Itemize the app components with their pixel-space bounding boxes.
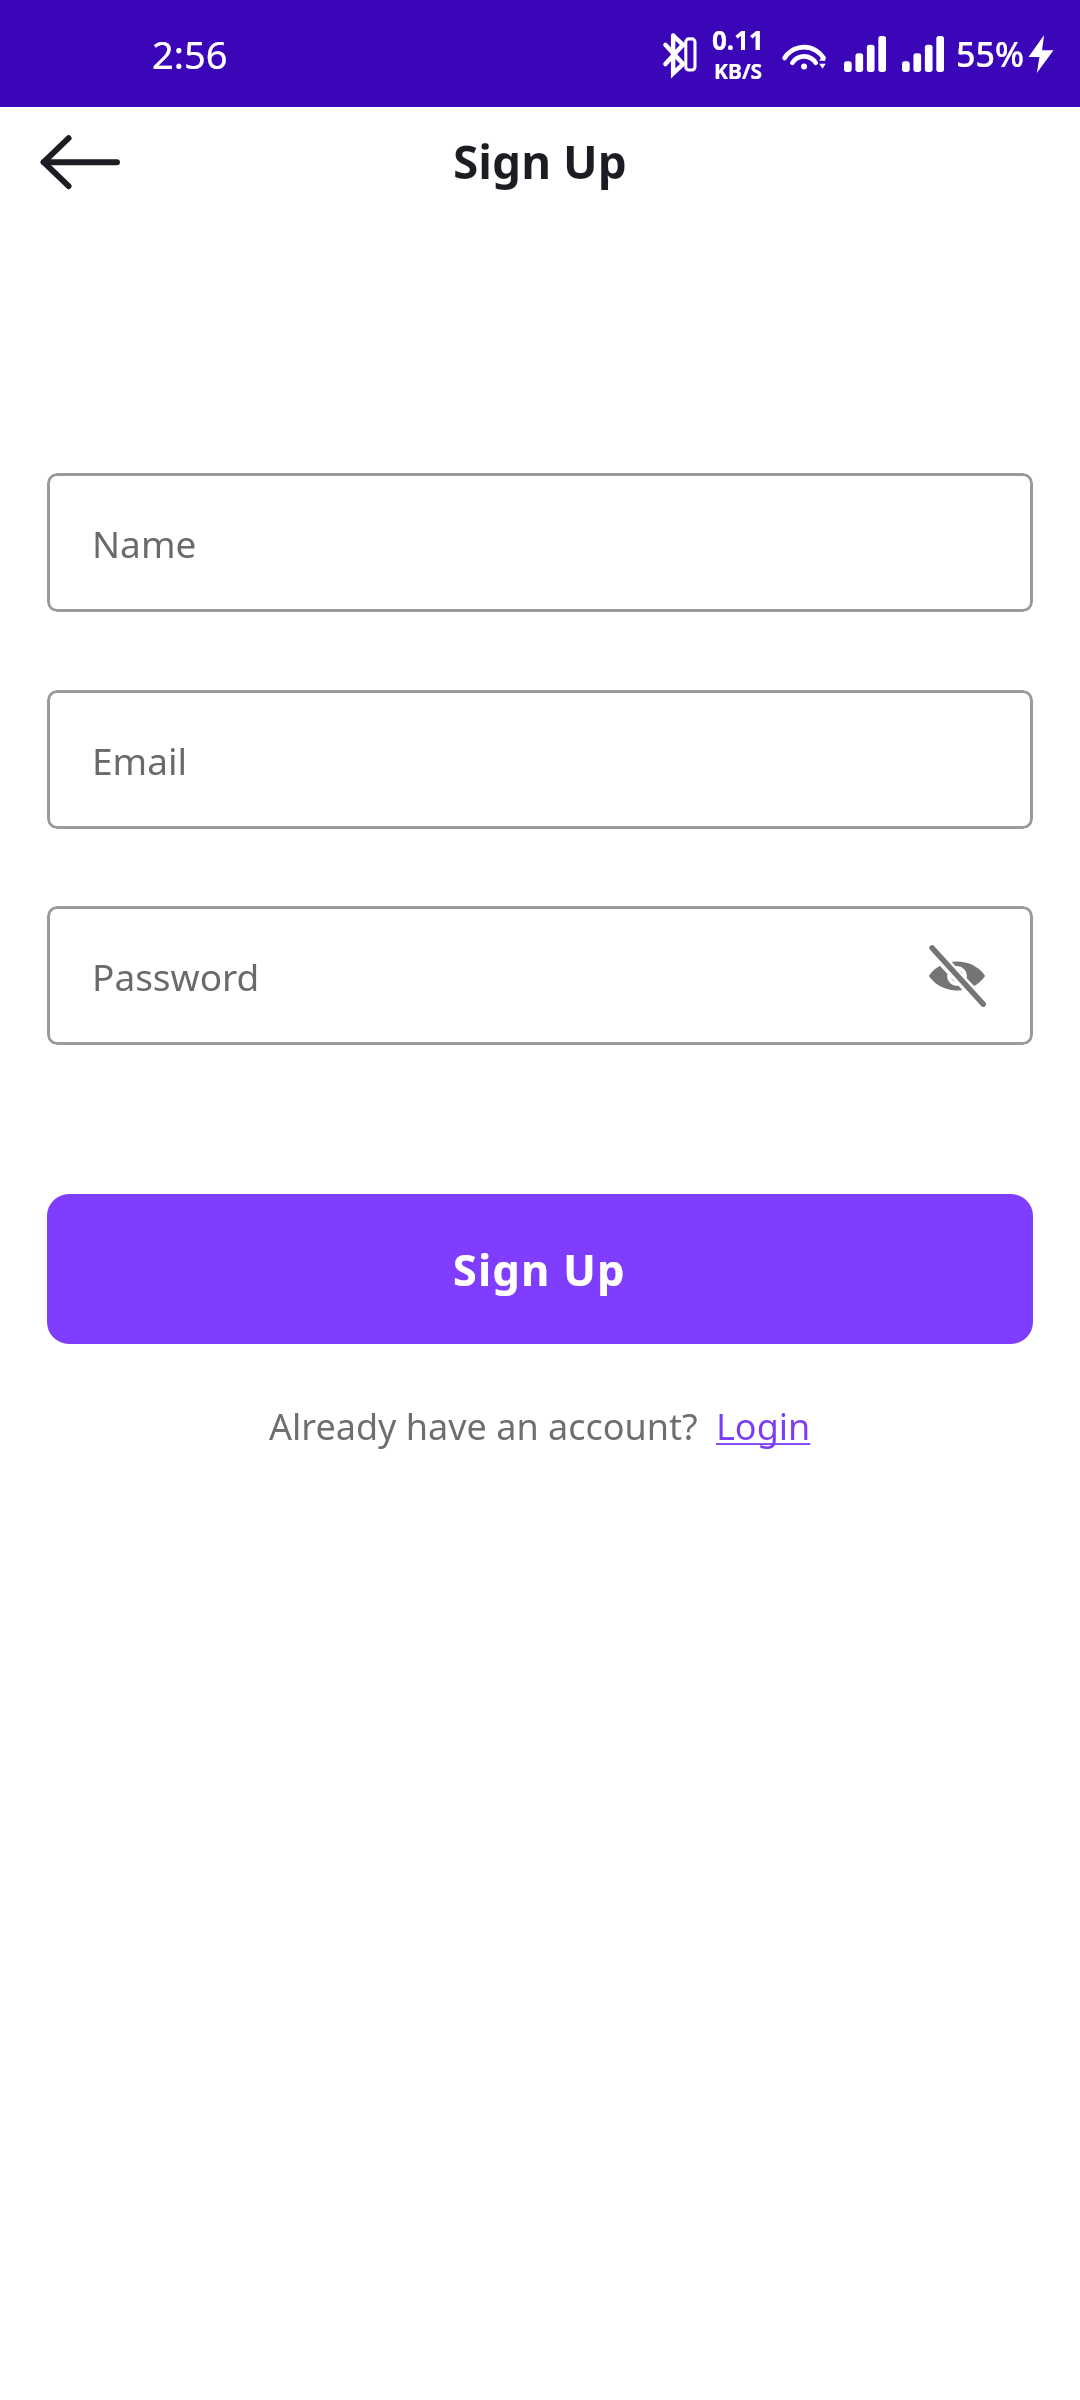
button[interactable]: Back (22, 111, 134, 211)
button[interactable]: Sign Up (47, 1194, 1033, 1344)
staticText: 55% (956, 31, 1024, 77)
staticText: 0.11 (712, 22, 764, 57)
staticText: Name (92, 518, 197, 568)
button[interactable]: Email (47, 690, 1033, 829)
button[interactable]: Password (47, 906, 1033, 1045)
button[interactable]: Login (716, 1402, 811, 1451)
button[interactable]: Name (47, 473, 1033, 612)
staticText: KB/S (714, 57, 763, 86)
staticText: Login (716, 1402, 811, 1451)
staticText: Already have an account? (269, 1402, 698, 1451)
staticText: 2:56 (152, 28, 228, 80)
staticText: Sign Up (453, 1240, 627, 1299)
staticText: Email (92, 735, 188, 785)
button[interactable]: Show password (909, 928, 1005, 1024)
staticText: Sign Up (453, 130, 627, 193)
staticText: Password (92, 951, 260, 1001)
